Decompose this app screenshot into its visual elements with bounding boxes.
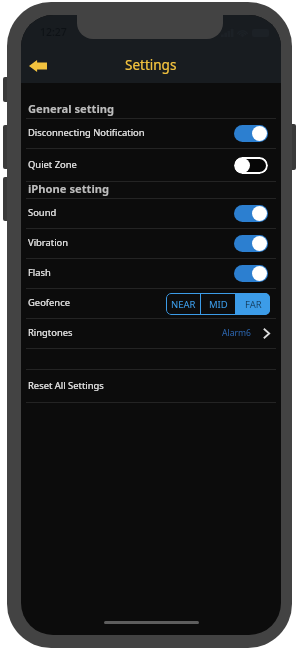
staticText: Flash	[28, 266, 51, 279]
button[interactable]: Toggle	[234, 265, 268, 282]
button[interactable]: Quiet Zone	[21, 149, 281, 181]
button[interactable]: Toggle	[234, 125, 268, 142]
button[interactable]: Reset All Settings	[21, 370, 281, 402]
button[interactable]: Vibration	[21, 229, 281, 258]
staticText: FAR	[245, 298, 262, 311]
staticText: MID	[209, 298, 228, 311]
button[interactable]: Toggle	[234, 157, 268, 174]
button[interactable]: Disconnecting Notification	[21, 119, 281, 148]
button[interactable]: Toggle	[234, 205, 268, 222]
button[interactable]: FAR	[236, 293, 270, 315]
staticText: Disconnecting Notification	[28, 126, 145, 139]
staticText: Settings	[125, 56, 177, 74]
staticText: General setting	[28, 101, 115, 116]
button[interactable]: Toggle	[234, 235, 268, 252]
button[interactable]: Flash	[21, 259, 281, 288]
staticText: Ringtones	[28, 326, 73, 339]
button[interactable]: NEAR	[166, 293, 200, 315]
staticText: iPhone setting	[28, 181, 110, 196]
staticText: Quiet Zone	[28, 158, 77, 171]
staticText: Geofence	[28, 296, 70, 309]
staticText: NEAR	[171, 298, 196, 311]
staticText: Sound	[28, 206, 57, 219]
button[interactable]: Back	[22, 50, 54, 82]
staticText: Alarm6	[222, 327, 252, 339]
button[interactable]: Sound	[21, 199, 281, 228]
staticText: Reset All Settings	[28, 379, 104, 392]
button[interactable]: Ringtones	[21, 319, 281, 348]
staticText: Vibration	[28, 236, 69, 249]
staticText: 12:27	[40, 25, 67, 39]
button[interactable]: MID	[201, 293, 235, 315]
